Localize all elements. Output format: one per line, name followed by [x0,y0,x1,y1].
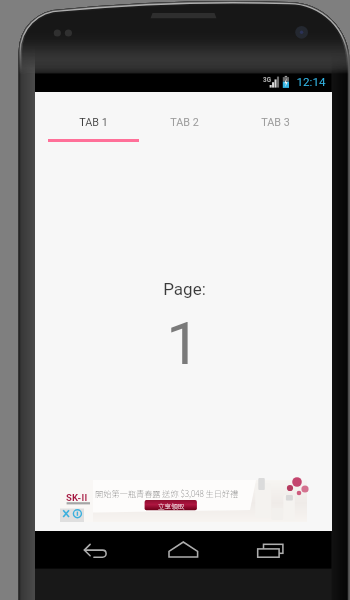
staticText: 3G [263,76,271,83]
staticText: 1 [166,308,200,378]
button[interactable]: TAB 2 [139,100,230,145]
button[interactable]: TAB 3 [230,100,321,145]
button[interactable]: Home [157,531,209,569]
staticText: TAB 1 [79,116,108,129]
button[interactable]: Recent apps [244,531,296,569]
staticText: 立享領取 [158,501,185,511]
staticText: 開始第一瓶青春露 送妳 $3,048 生日好禮 [95,487,239,499]
staticText: TAB 2 [170,116,199,129]
staticText: Page: [163,279,206,299]
staticText: 12:14 [296,75,326,89]
staticText: TAB 3 [261,116,290,129]
button[interactable]: Advertisement [60,480,307,522]
button[interactable]: TAB 1 [48,100,139,145]
staticText: SK-II [66,492,88,503]
button[interactable]: Back [71,531,123,569]
